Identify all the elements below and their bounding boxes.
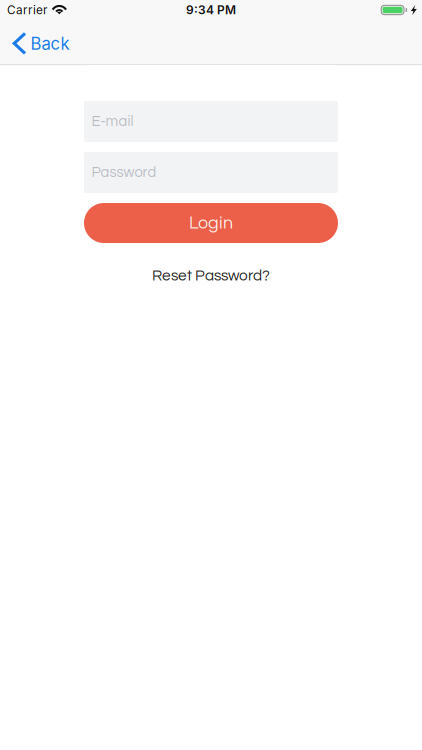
button[interactable]: Back — [0, 23, 80, 61]
button[interactable]: Login — [84, 203, 338, 243]
staticText: 9:34 PM — [186, 3, 236, 17]
button[interactable]: Password — [84, 152, 338, 193]
staticText: Carrier — [7, 3, 47, 17]
staticText: E-mail — [91, 114, 133, 129]
button[interactable]: E-mail — [84, 101, 338, 142]
staticText: Login — [189, 214, 233, 232]
button[interactable]: Reset Password? — [144, 265, 278, 287]
staticText: Reset Password? — [152, 268, 270, 284]
staticText: Password — [91, 165, 156, 180]
staticText: Back — [31, 34, 70, 54]
